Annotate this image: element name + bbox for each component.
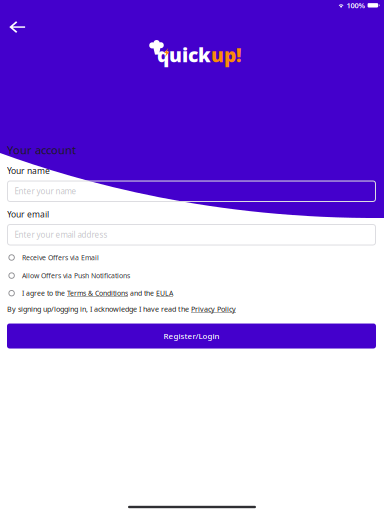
staticText: Enter your email address (14, 229, 107, 240)
staticText: Your name (7, 165, 50, 177)
button[interactable]: Register/Login (7, 323, 376, 348)
staticText: I agree to the Terms & Conditions and th… (22, 288, 173, 298)
staticText: Enter your name (14, 186, 76, 197)
staticText: Register/Login (163, 331, 219, 341)
button[interactable]: Allow Offers via Push Notifications (0, 267, 240, 285)
staticText: Allow Offers via Push Notifications (22, 271, 130, 280)
staticText: 100% (346, 0, 365, 10)
staticText: Your email (7, 208, 49, 220)
staticText: Your account (7, 142, 76, 158)
staticText: quick (157, 42, 211, 68)
button[interactable]: Receive Offers via Email (0, 248, 240, 266)
button[interactable]: Back (0, 12, 34, 42)
staticText: Receive Offers via Email (22, 253, 99, 262)
staticText: By signing up/logging in, I acknowledge … (7, 304, 236, 314)
button[interactable]: I agree to the Terms & Conditions and th… (0, 284, 240, 302)
staticText: up! (211, 42, 242, 68)
